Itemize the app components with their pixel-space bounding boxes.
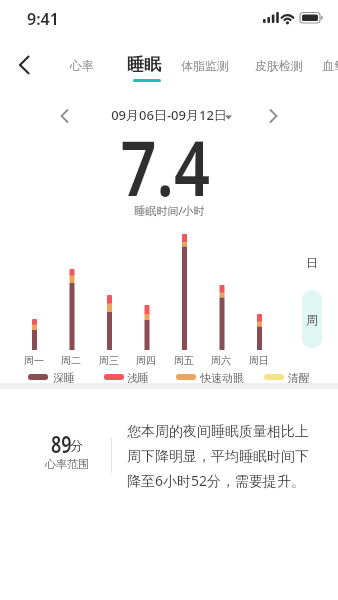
staticText: 7.4	[121, 116, 210, 218]
staticText: 日	[306, 255, 318, 270]
staticText: 09月06日-09月12日	[111, 106, 227, 124]
button[interactable]	[10, 53, 34, 77]
staticText: 周一	[24, 354, 44, 367]
staticText: 皮肤检测	[255, 58, 303, 73]
button[interactable]: 周	[302, 290, 322, 348]
button[interactable]: 血氧	[322, 58, 338, 73]
staticText: 周日	[249, 354, 269, 367]
button[interactable]: 09月06日-09月12日	[99, 106, 239, 124]
staticText: 血氧	[322, 58, 338, 73]
staticText: 89	[51, 428, 72, 459]
staticText: 深睡	[53, 371, 75, 385]
staticText: 清醒	[288, 371, 310, 385]
staticText: 9:41	[27, 8, 59, 30]
staticText: 周二	[61, 354, 81, 367]
staticText: 体脂监测	[181, 58, 229, 73]
button[interactable]: 皮肤检测	[249, 58, 309, 73]
staticText: 快速动眼	[200, 371, 244, 385]
staticText: 分	[70, 437, 83, 453]
staticText: 心率	[70, 58, 94, 73]
button[interactable]: 睡眠	[117, 54, 171, 75]
staticText: 您本周的夜间睡眠质量相比上周下降明显，平均睡眠时间下降至6小时52分，需要提升。	[127, 423, 313, 490]
button[interactable]: 心率	[57, 58, 107, 73]
button[interactable]: 日	[296, 255, 328, 270]
staticText: 心率范围	[45, 457, 89, 471]
button[interactable]	[262, 105, 284, 127]
staticText: 周六	[211, 354, 231, 367]
staticText: 周三	[99, 354, 119, 367]
staticText: 周五	[174, 354, 194, 367]
button[interactable]: 体脂监测	[175, 58, 235, 73]
staticText: 浅睡	[127, 371, 149, 385]
staticText: 周四	[136, 354, 156, 367]
staticText: 周	[306, 312, 318, 327]
staticText: 睡眠	[127, 54, 161, 75]
button[interactable]	[54, 105, 76, 127]
staticText: 睡眠时间/小时	[134, 203, 205, 218]
